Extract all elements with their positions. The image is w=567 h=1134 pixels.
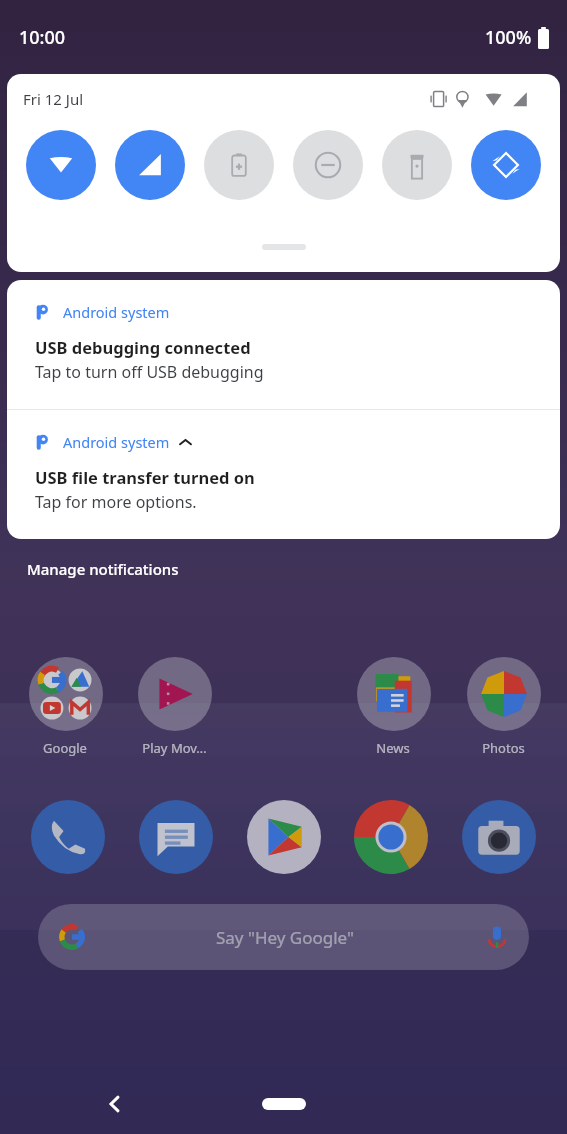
button[interactable]: Phone xyxy=(28,797,108,877)
staticText: Android system xyxy=(63,302,170,322)
button[interactable] xyxy=(27,655,104,732)
button[interactable]: Auto-rotate xyxy=(471,130,541,200)
staticText: 10:00 xyxy=(19,25,66,50)
button[interactable]: Camera xyxy=(459,797,539,877)
button[interactable]: Messages xyxy=(136,797,216,877)
button[interactable]: Wi-Fi xyxy=(26,130,96,200)
staticText: News xyxy=(376,739,410,757)
button[interactable]: Mobile data xyxy=(115,130,185,200)
staticText: Photos xyxy=(482,739,525,757)
button[interactable] xyxy=(465,655,542,732)
button[interactable] xyxy=(136,655,213,732)
staticText: USB debugging connected xyxy=(35,336,251,358)
button[interactable]: Play Store xyxy=(244,797,324,877)
staticText: USB file transfer turned on xyxy=(35,466,255,488)
button[interactable]: Manage notifications xyxy=(27,559,179,579)
button[interactable]: Back xyxy=(105,1094,125,1114)
staticText: Tap for more options. xyxy=(35,491,197,513)
staticText: Say "Hey Google" xyxy=(216,926,354,949)
button[interactable] xyxy=(355,655,432,732)
button[interactable]: Android system xyxy=(7,410,560,539)
staticText: Tap to turn off USB debugging xyxy=(35,361,264,383)
button[interactable]: Android system xyxy=(7,280,560,409)
button[interactable]: Battery saver xyxy=(204,130,274,200)
button[interactable]: Say "Hey Google" xyxy=(38,904,529,970)
button[interactable]: Do not disturb xyxy=(293,130,363,200)
button[interactable]: Flashlight xyxy=(382,130,452,200)
staticText: Play Mov… xyxy=(142,739,207,757)
button[interactable]: Home xyxy=(262,1098,306,1110)
staticText: Google xyxy=(43,739,87,757)
button[interactable] xyxy=(246,655,323,732)
button[interactable]: Chrome xyxy=(351,797,431,877)
staticText: Fri 12 Jul xyxy=(23,89,84,109)
staticText: Android system xyxy=(63,432,170,452)
staticText: 100% xyxy=(485,25,532,50)
